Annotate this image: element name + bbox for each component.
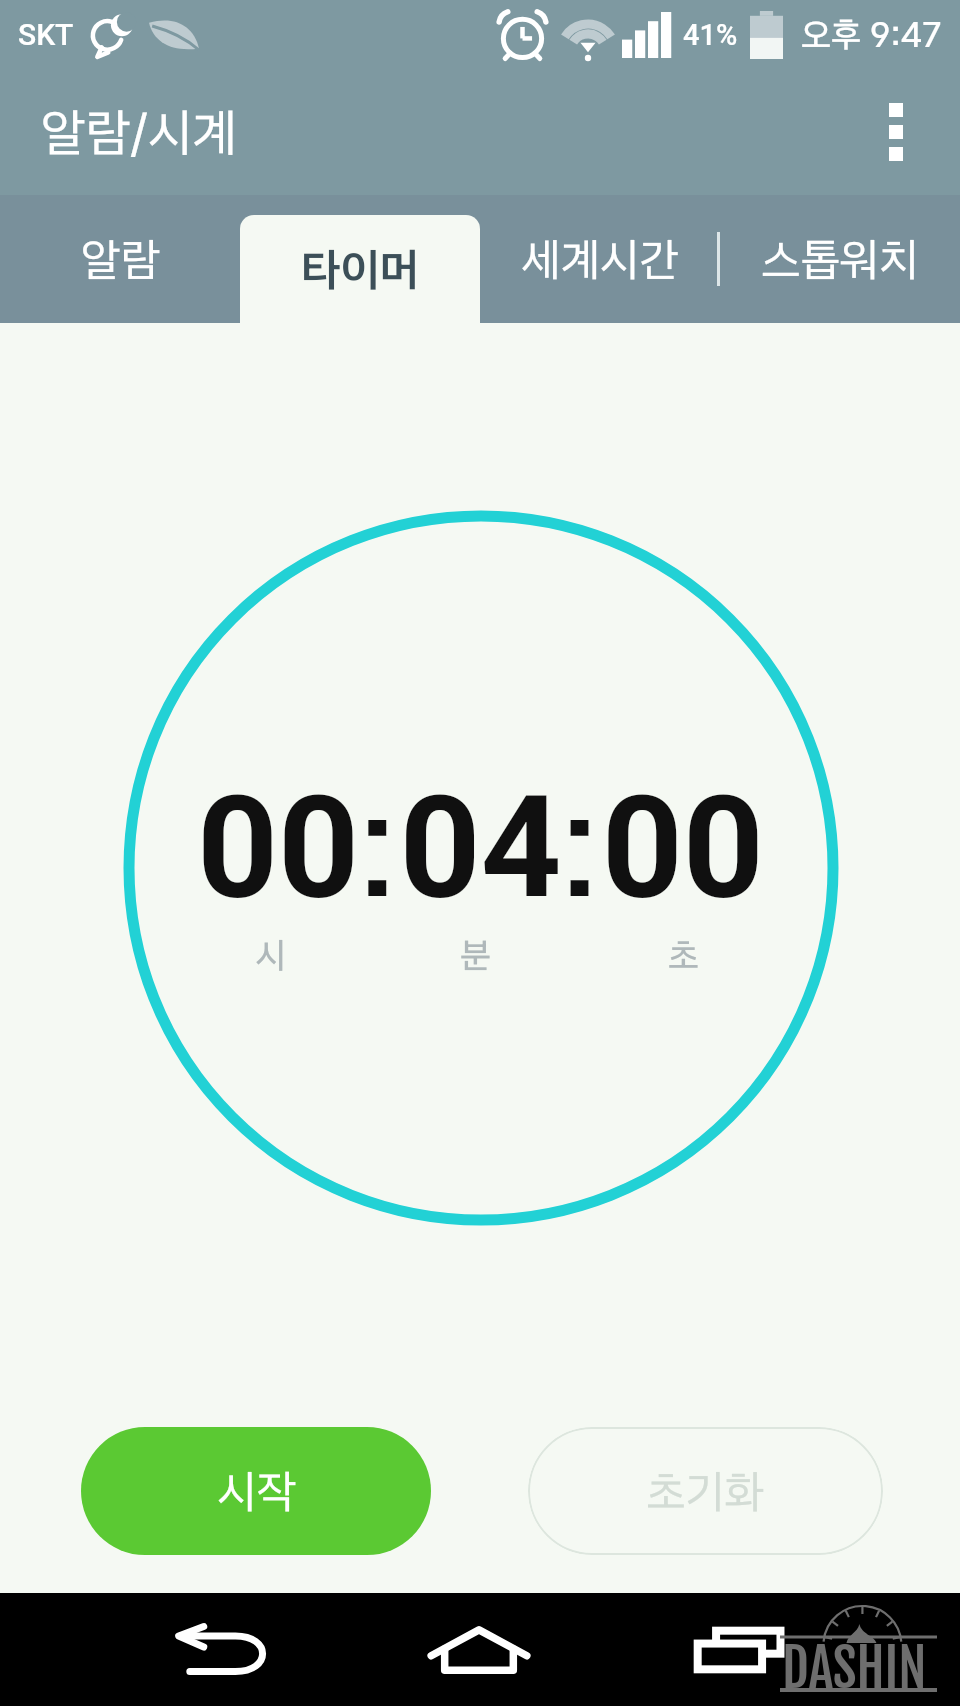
staticText: 00:04:00	[197, 749, 764, 953]
staticText: 오후 9:47	[801, 14, 941, 56]
staticText: 타이머	[301, 242, 420, 297]
staticText: 초기화	[646, 1464, 765, 1519]
button[interactable]: 초기화	[528, 1427, 883, 1555]
staticText: 초	[668, 934, 699, 977]
button[interactable]: 세계시간	[480, 195, 720, 323]
staticText: 41%	[683, 18, 738, 52]
staticText: 알람/시계	[41, 101, 237, 163]
button[interactable]: Back	[120, 1593, 320, 1706]
button[interactable]: 알람	[0, 195, 240, 323]
staticText: 알람	[81, 232, 160, 287]
staticText: 세계시간	[521, 232, 679, 287]
button[interactable]: 스톱워치	[720, 195, 960, 323]
staticText: DASHIN	[782, 1636, 927, 1701]
staticText: SKT	[18, 17, 74, 52]
button[interactable]: Home	[379, 1593, 579, 1706]
button[interactable]: 타이머	[240, 215, 480, 323]
button[interactable]: More options	[832, 68, 960, 195]
staticText: 스톱워치	[761, 232, 919, 287]
staticText: 분	[460, 934, 491, 977]
button[interactable]: 시작	[81, 1427, 431, 1555]
staticText: 시	[255, 934, 286, 977]
button[interactable]: Recent apps	[640, 1593, 840, 1706]
staticText: 시작	[217, 1464, 296, 1519]
